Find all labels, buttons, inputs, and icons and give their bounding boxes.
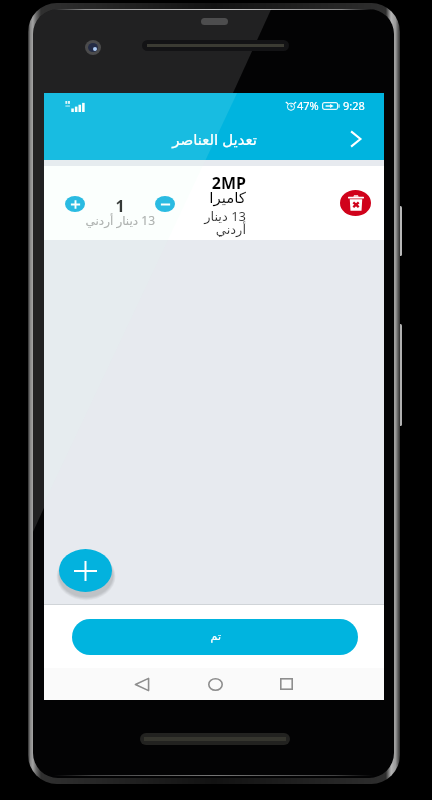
- button[interactable]: تم: [72, 619, 358, 655]
- staticText: 47%: [297, 98, 319, 113]
- staticText: 2MP: [181, 172, 246, 194]
- button[interactable]: Increase quantity: [44, 166, 384, 240]
- staticText: 1: [114, 195, 126, 217]
- button[interactable]: Back: [120, 668, 164, 700]
- button[interactable]: Recent apps: [264, 668, 308, 700]
- button[interactable]: Delete item: [326, 166, 384, 240]
- button[interactable]: Next: [334, 117, 376, 160]
- button[interactable]: Increase quantity: [65, 196, 85, 212]
- staticText: كاميرا: [181, 189, 246, 206]
- button[interactable]: Home: [193, 668, 237, 700]
- staticText: تم: [210, 630, 221, 643]
- staticText: 13 دينار أردني: [181, 207, 246, 237]
- button[interactable]: Decrease quantity: [155, 196, 175, 212]
- staticText: 9:28: [343, 98, 365, 113]
- staticText: تعديل العناصر: [172, 129, 257, 149]
- button[interactable]: Add item: [59, 549, 112, 592]
- staticText: 13 دينار أردني: [85, 212, 155, 228]
